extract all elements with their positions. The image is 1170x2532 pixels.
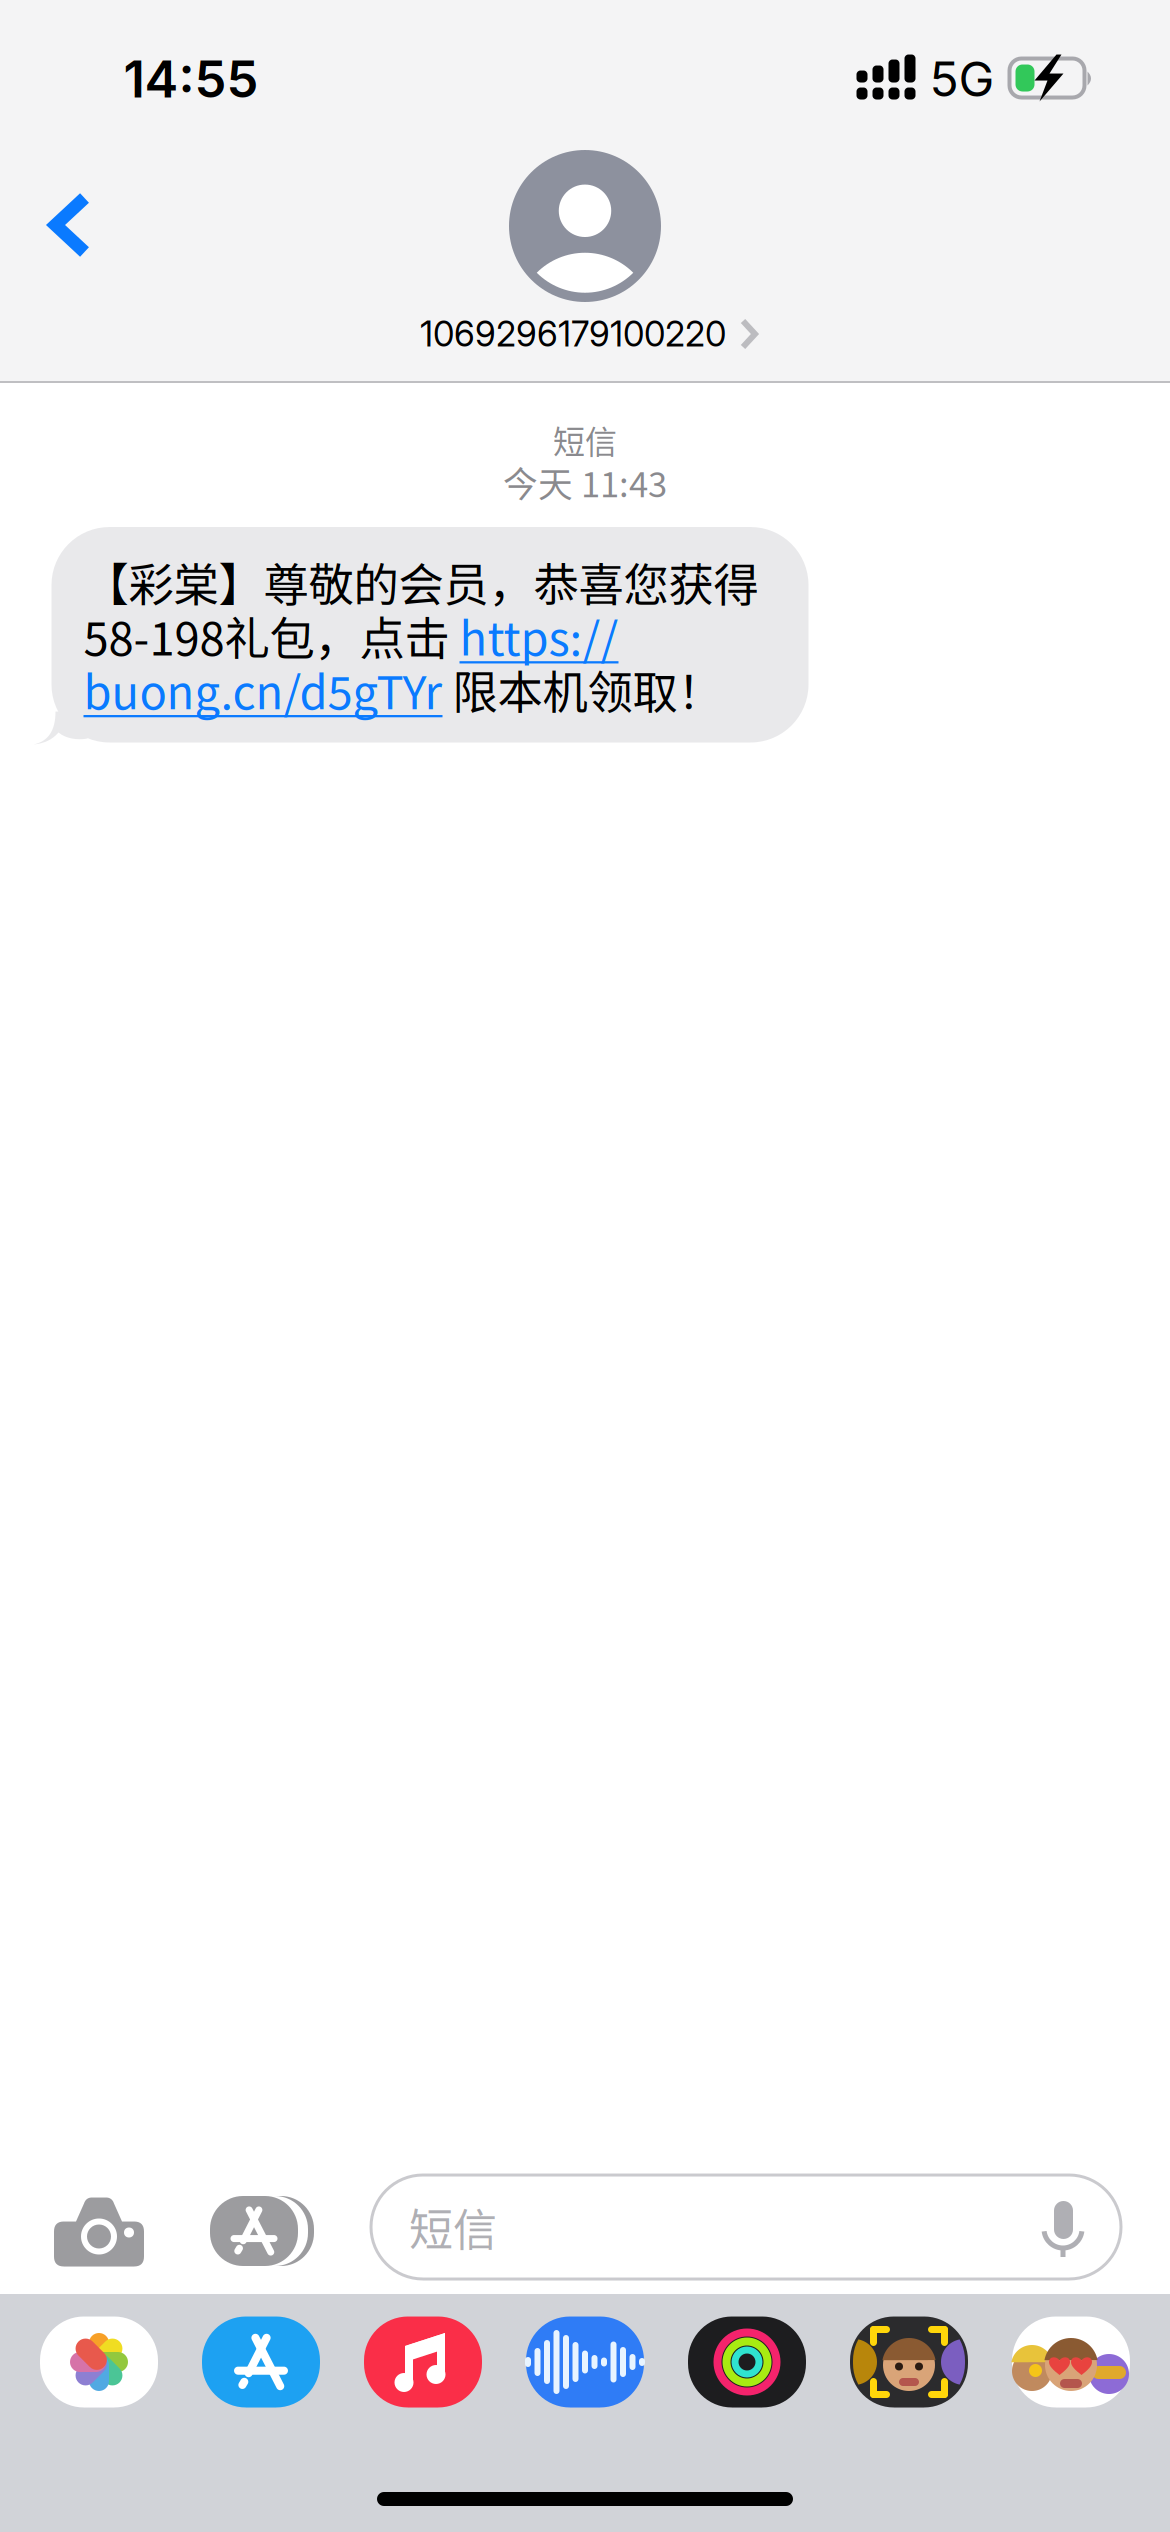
staticText: 短信 (409, 2195, 497, 2259)
staticText: 14:55 (123, 48, 258, 110)
button[interactable]: Photos (40, 2316, 158, 2407)
staticText: 短信 (553, 417, 617, 463)
button[interactable]: Music (364, 2316, 482, 2407)
button[interactable]: 1069296179100220 (420, 302, 758, 366)
button[interactable]: Camera (54, 2195, 144, 2266)
button[interactable]: Audio Messages (526, 2316, 644, 2407)
staticText: 1069296179100220 (420, 313, 726, 355)
button[interactable]: Memoji (850, 2316, 968, 2407)
button[interactable]: Fitness (688, 2316, 806, 2407)
button[interactable]: App Store (210, 2196, 314, 2266)
button[interactable]: 短信 (371, 2175, 1121, 2279)
staticText: 【彩棠】尊敬的会员，恭喜您获得58-198礼包，点击 https://buong… (83, 555, 758, 716)
button[interactable]: Stickers (1012, 2316, 1130, 2407)
staticText: 5G (929, 50, 994, 108)
staticText: 今天 11:43 (503, 457, 667, 507)
button[interactable]: Back (10, 165, 130, 285)
button[interactable]: App Store (202, 2316, 320, 2407)
